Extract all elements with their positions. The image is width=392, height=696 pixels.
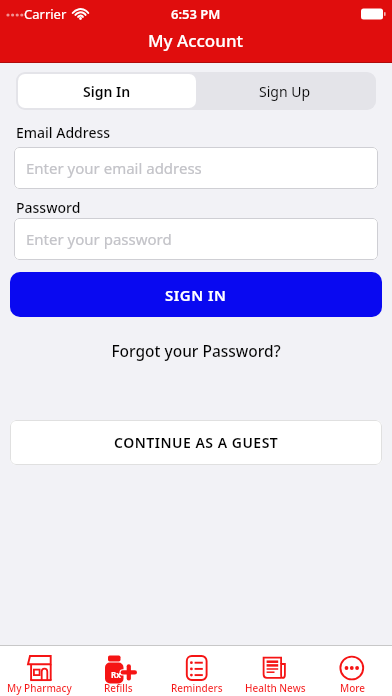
button[interactable]: Forgot your Password? bbox=[0, 340, 392, 361]
staticText: 6:53 PM bbox=[171, 5, 221, 23]
staticText: Carrier bbox=[24, 5, 67, 23]
button[interactable]: Enter your password bbox=[14, 218, 378, 260]
button[interactable]: Sign Up bbox=[196, 74, 374, 108]
staticText: Health News bbox=[245, 681, 306, 695]
button[interactable]: More bbox=[314, 646, 392, 696]
button[interactable]: CONTINUE AS A GUEST bbox=[10, 420, 382, 465]
staticText: Enter your email address bbox=[26, 158, 202, 178]
button[interactable]: Reminders bbox=[158, 646, 236, 696]
button[interactable]: Sign In bbox=[18, 74, 196, 108]
button[interactable]: My Pharmacy bbox=[0, 646, 79, 696]
staticText: CONTINUE AS A GUEST bbox=[114, 433, 279, 452]
button[interactable]: SIGN IN bbox=[10, 272, 382, 317]
staticText: Refills bbox=[104, 681, 133, 695]
staticText: Password bbox=[16, 198, 81, 217]
staticText: Sign Up bbox=[259, 82, 311, 101]
staticText: Email Address bbox=[16, 123, 111, 142]
button[interactable]: Health News bbox=[236, 646, 314, 696]
staticText: More bbox=[340, 681, 366, 695]
button[interactable]: Rx bbox=[79, 646, 158, 696]
staticText: Rx bbox=[111, 669, 121, 680]
staticText: Enter your password bbox=[26, 229, 172, 249]
staticText: My Pharmacy bbox=[7, 681, 72, 695]
staticText: SIGN IN bbox=[165, 285, 227, 305]
staticText: Reminders bbox=[171, 681, 223, 695]
staticText: Sign In bbox=[83, 82, 131, 101]
staticText: My Account bbox=[148, 29, 244, 52]
button[interactable]: Enter your email address bbox=[14, 147, 378, 189]
